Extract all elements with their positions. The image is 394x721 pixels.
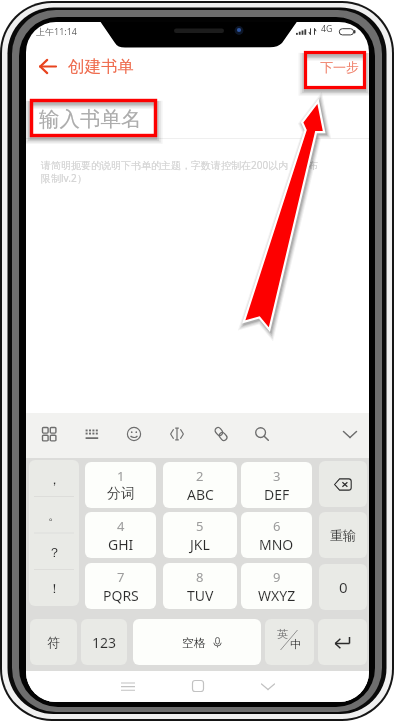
staticText: 8 [196,568,204,586]
button[interactable]: 4 [85,512,156,558]
button[interactable]: 下一步 [310,54,368,80]
staticText: ！ [48,580,61,596]
staticText: 5 [196,517,204,535]
staticText: 重输 [330,527,356,543]
staticText: 7 [117,568,125,586]
staticText: 9 [273,568,281,586]
button[interactable]: ， [29,460,79,497]
staticText: ？ [48,544,61,560]
button[interactable]: Apps [33,418,65,450]
button[interactable]: Keyboard layout [76,418,108,450]
staticText: JKL [190,535,210,554]
staticText: TUV [187,586,214,605]
staticText: 上午11:14 [36,25,78,37]
staticText: GHI [108,535,134,554]
button[interactable]: 9 [241,563,312,609]
button[interactable]: Edit text [161,418,193,450]
button[interactable]: 。 [29,496,79,533]
button[interactable]: 5 [163,512,237,558]
button[interactable]: Attach [205,418,237,450]
button[interactable]: 空格 [133,619,261,665]
staticText: 英 [277,627,288,641]
staticText: DEF [264,485,290,504]
button[interactable]: Emoji [118,418,150,450]
staticText: 输入书单名 [39,106,142,132]
staticText: 0 [339,577,348,597]
staticText: 中 [290,637,301,651]
staticText: 2 [196,467,204,485]
staticText: 1 [117,467,125,485]
staticText: 请简明扼要的说明下书单的主题，字数请控制在200以内（发布限制lv.2） [41,158,322,198]
staticText: 空格 [182,635,206,650]
staticText: 3 [273,467,281,485]
button[interactable]: Backspace [319,461,367,507]
button[interactable]: ？ [29,533,79,570]
button[interactable]: Switch language [265,619,314,665]
button[interactable]: Recent apps [112,674,144,698]
button[interactable]: 0 [319,564,367,610]
button[interactable]: 8 [163,563,237,609]
button[interactable]: Home [182,674,214,698]
staticText: 123 [92,633,117,652]
staticText: 符 [47,634,60,650]
button[interactable]: Back [252,674,284,698]
staticText: 4G [321,23,333,35]
staticText: 6 [273,517,281,535]
staticText: 。 [48,507,61,523]
staticText: WXYZ [258,586,296,605]
button[interactable]: Enter [318,619,367,665]
staticText: ABC [187,485,214,504]
button[interactable]: Back [32,52,63,80]
staticText: 4 [117,517,125,535]
staticText: 下一步 [320,59,359,75]
button[interactable]: 1 [85,462,156,508]
staticText: ， [48,471,61,487]
button[interactable]: 7 [85,563,156,609]
button[interactable]: 123 [81,619,127,665]
button[interactable]: 重输 [319,512,367,558]
staticText: PQRS [103,586,139,605]
button[interactable]: ！ [29,569,79,606]
staticText: 分词 [107,485,135,503]
button[interactable]: 2 [163,462,237,508]
button[interactable]: Search [246,418,278,450]
button[interactable]: 符 [30,619,77,665]
button[interactable]: Hide keyboard [334,418,366,450]
staticText: MNO [259,535,294,554]
button[interactable]: 6 [241,512,312,558]
button[interactable]: 输入书单名 [26,100,369,138]
staticText: 创建书单 [68,56,134,77]
button[interactable]: 3 [241,462,312,508]
